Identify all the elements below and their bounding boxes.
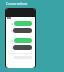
button[interactable] bbox=[6, 28, 35, 33]
staticText: Conversations bbox=[6, 2, 28, 6]
button[interactable] bbox=[6, 38, 35, 43]
button[interactable] bbox=[6, 21, 35, 26]
button[interactable] bbox=[6, 45, 35, 50]
